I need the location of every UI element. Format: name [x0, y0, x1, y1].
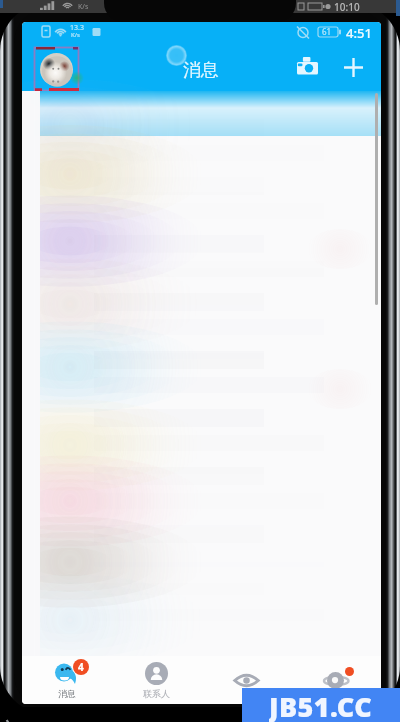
- staticText: 10:10: [334, 0, 360, 14]
- staticText: 13.3: [70, 23, 84, 33]
- staticText: 联系人: [143, 688, 170, 699]
- staticText: 61: [322, 26, 332, 37]
- button[interactable]: Profile: [33, 46, 80, 92]
- button[interactable]: Add: [336, 50, 370, 84]
- button[interactable]: 联系人: [111, 656, 201, 704]
- staticText: K/s: [71, 31, 80, 39]
- staticText: 4: [78, 660, 84, 674]
- button[interactable]: 动态: [291, 656, 381, 704]
- button[interactable]: 消息: [22, 656, 111, 704]
- button[interactable]: 看点: [201, 656, 291, 704]
- staticText: 消息: [58, 688, 76, 699]
- staticText: 4:51: [346, 24, 372, 42]
- staticText: K/s: [78, 2, 89, 12]
- staticText: 消息: [183, 59, 219, 82]
- button[interactable]: Camera: [290, 50, 324, 84]
- staticText: JB51.CC: [269, 688, 373, 722]
